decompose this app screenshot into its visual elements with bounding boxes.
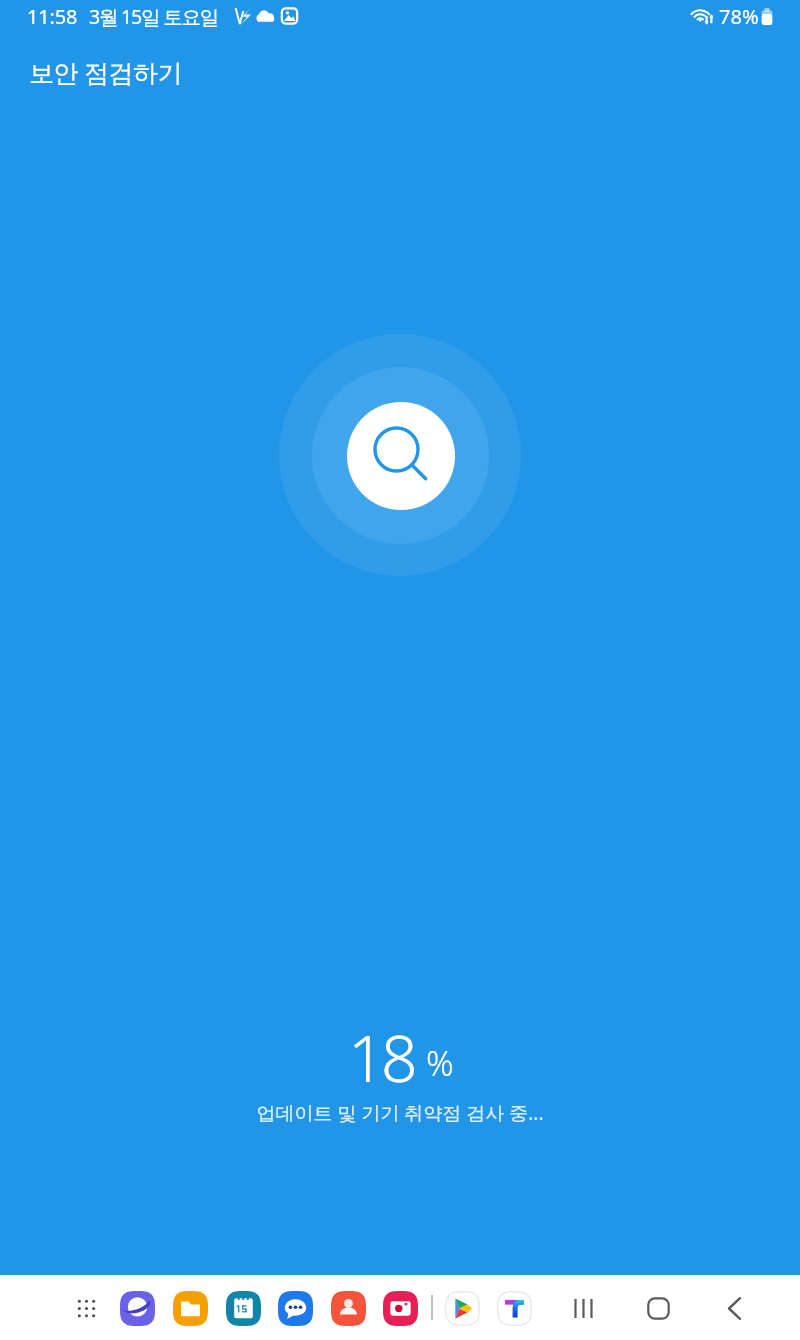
button[interactable]: Calendar	[224, 1289, 262, 1327]
staticText: 업데이트 및 기기 취약점 검사 중...	[0, 1100, 800, 1126]
staticText: %	[426, 1040, 452, 1086]
button[interactable]: T Membership	[495, 1289, 533, 1327]
button[interactable]: Play Store	[443, 1289, 481, 1327]
button[interactable]: Contacts	[329, 1289, 367, 1327]
staticText: 3월 15일 토요일	[89, 3, 219, 30]
button[interactable]: Camera	[381, 1289, 419, 1327]
button[interactable]: Recent apps	[564, 1289, 602, 1327]
staticText: 보안 점검하기	[29, 55, 183, 89]
button[interactable]: Samsung Internet	[118, 1289, 156, 1327]
button[interactable]: My Files	[171, 1289, 209, 1327]
button[interactable]: Back	[715, 1289, 753, 1327]
staticText: 11:58	[27, 3, 78, 30]
staticText: 78%	[719, 3, 759, 30]
button[interactable]: Apps	[67, 1289, 105, 1327]
staticText: 18	[348, 1014, 415, 1101]
button[interactable]: Messages	[276, 1289, 314, 1327]
button[interactable]: Home	[639, 1289, 677, 1327]
